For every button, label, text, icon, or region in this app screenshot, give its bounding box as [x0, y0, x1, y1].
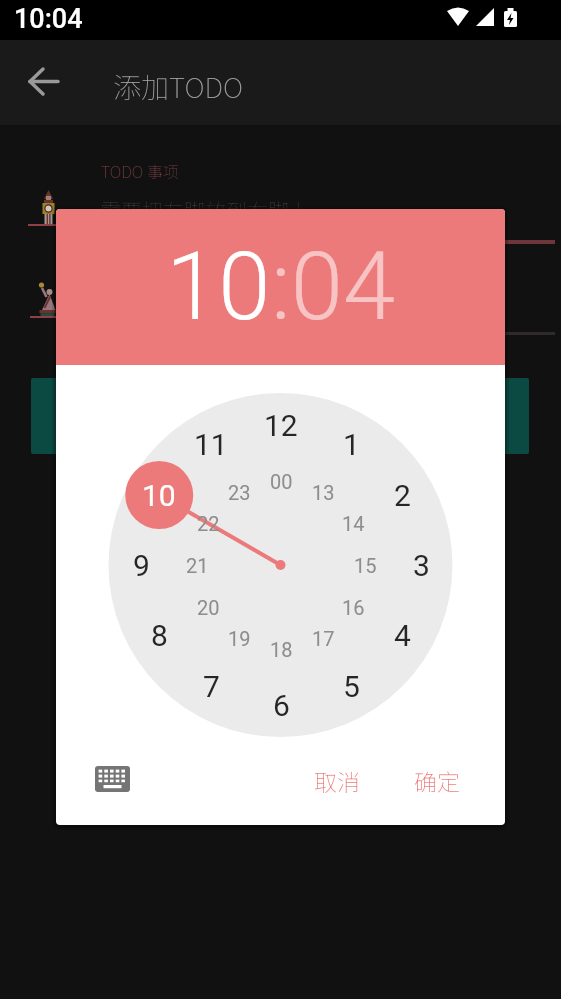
staticText: 6 — [273, 688, 290, 723]
staticText: 2 — [394, 478, 411, 513]
staticText: 确定 — [414, 764, 460, 797]
staticText: 4 — [394, 618, 411, 653]
staticText: 15 — [354, 554, 377, 577]
staticText: 5 — [343, 669, 360, 704]
staticText: 11 — [194, 427, 228, 462]
staticText: 17 — [312, 627, 335, 650]
button[interactable] — [20, 68, 66, 114]
staticText: 10:04 — [14, 3, 83, 35]
button[interactable]: 确定 — [394, 757, 480, 803]
staticText: 12 — [264, 408, 298, 443]
staticText: 9 — [133, 548, 150, 583]
staticText: 10 — [142, 478, 176, 513]
staticText: 16 — [342, 596, 365, 619]
staticText: 8 — [151, 618, 168, 653]
staticText: 1 — [343, 427, 360, 462]
staticText: TODO 事项 — [101, 159, 179, 182]
staticText: 7 — [203, 669, 220, 704]
staticText: 18 — [270, 638, 293, 661]
staticText: 取消 — [314, 764, 360, 797]
staticText: 19 — [228, 627, 251, 650]
staticText: 添加TODO — [113, 66, 243, 107]
staticText: 20 — [197, 596, 220, 619]
staticText: 14 — [342, 512, 365, 535]
button[interactable] — [31, 378, 529, 454]
staticText: 22 — [197, 512, 220, 535]
staticText: 21 — [186, 554, 209, 577]
staticText: 10 — [166, 232, 271, 342]
staticText: 23 — [228, 481, 251, 504]
staticText: 需要把左脚放到右脚上 — [100, 195, 310, 225]
staticText: 00 — [270, 470, 293, 493]
staticText: 13 — [312, 481, 335, 504]
button[interactable] — [88, 759, 136, 799]
staticText: 3 — [413, 548, 430, 583]
staticText: :04 — [271, 232, 396, 342]
button[interactable]: 取消 — [294, 757, 380, 803]
